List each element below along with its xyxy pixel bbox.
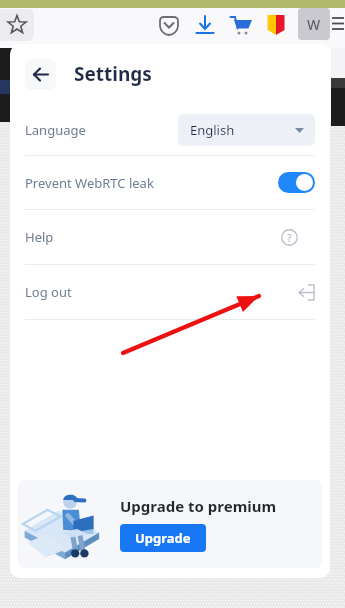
button[interactable]: Save to Pocket xyxy=(158,14,180,36)
button[interactable]: Bookmark xyxy=(0,9,34,41)
staticText: Prevent WebRTC leak xyxy=(25,174,154,192)
staticText: Settings xyxy=(74,61,152,87)
button[interactable]: Shopping cart xyxy=(230,14,254,38)
staticText: Language xyxy=(25,121,86,139)
button[interactable]: Account xyxy=(298,8,330,40)
staticText: W xyxy=(307,15,321,34)
staticText: Upgrade xyxy=(135,529,191,547)
button[interactable]: Log out xyxy=(25,265,315,319)
staticText: Log out xyxy=(25,283,72,301)
staticText: ? xyxy=(287,231,292,245)
button[interactable]: Upgrade xyxy=(120,524,206,552)
staticText: English xyxy=(190,121,235,139)
button[interactable]: Prevent WebRTC leak xyxy=(25,156,315,209)
button[interactable]: Language xyxy=(25,104,315,155)
button[interactable]: Upgrade to premium xyxy=(18,480,322,568)
staticText: Help xyxy=(25,228,54,246)
button[interactable]: Prevent WebRTC leak toggle xyxy=(278,172,315,193)
button[interactable]: Downloads xyxy=(194,14,216,36)
button[interactable]: Back xyxy=(25,59,56,90)
button[interactable]: Help xyxy=(25,210,315,264)
staticText: Upgrade to premium xyxy=(120,496,277,516)
button[interactable]: Menu xyxy=(332,16,345,32)
button[interactable]: English xyxy=(178,114,315,146)
button[interactable]: Bookmarks xyxy=(266,13,286,37)
